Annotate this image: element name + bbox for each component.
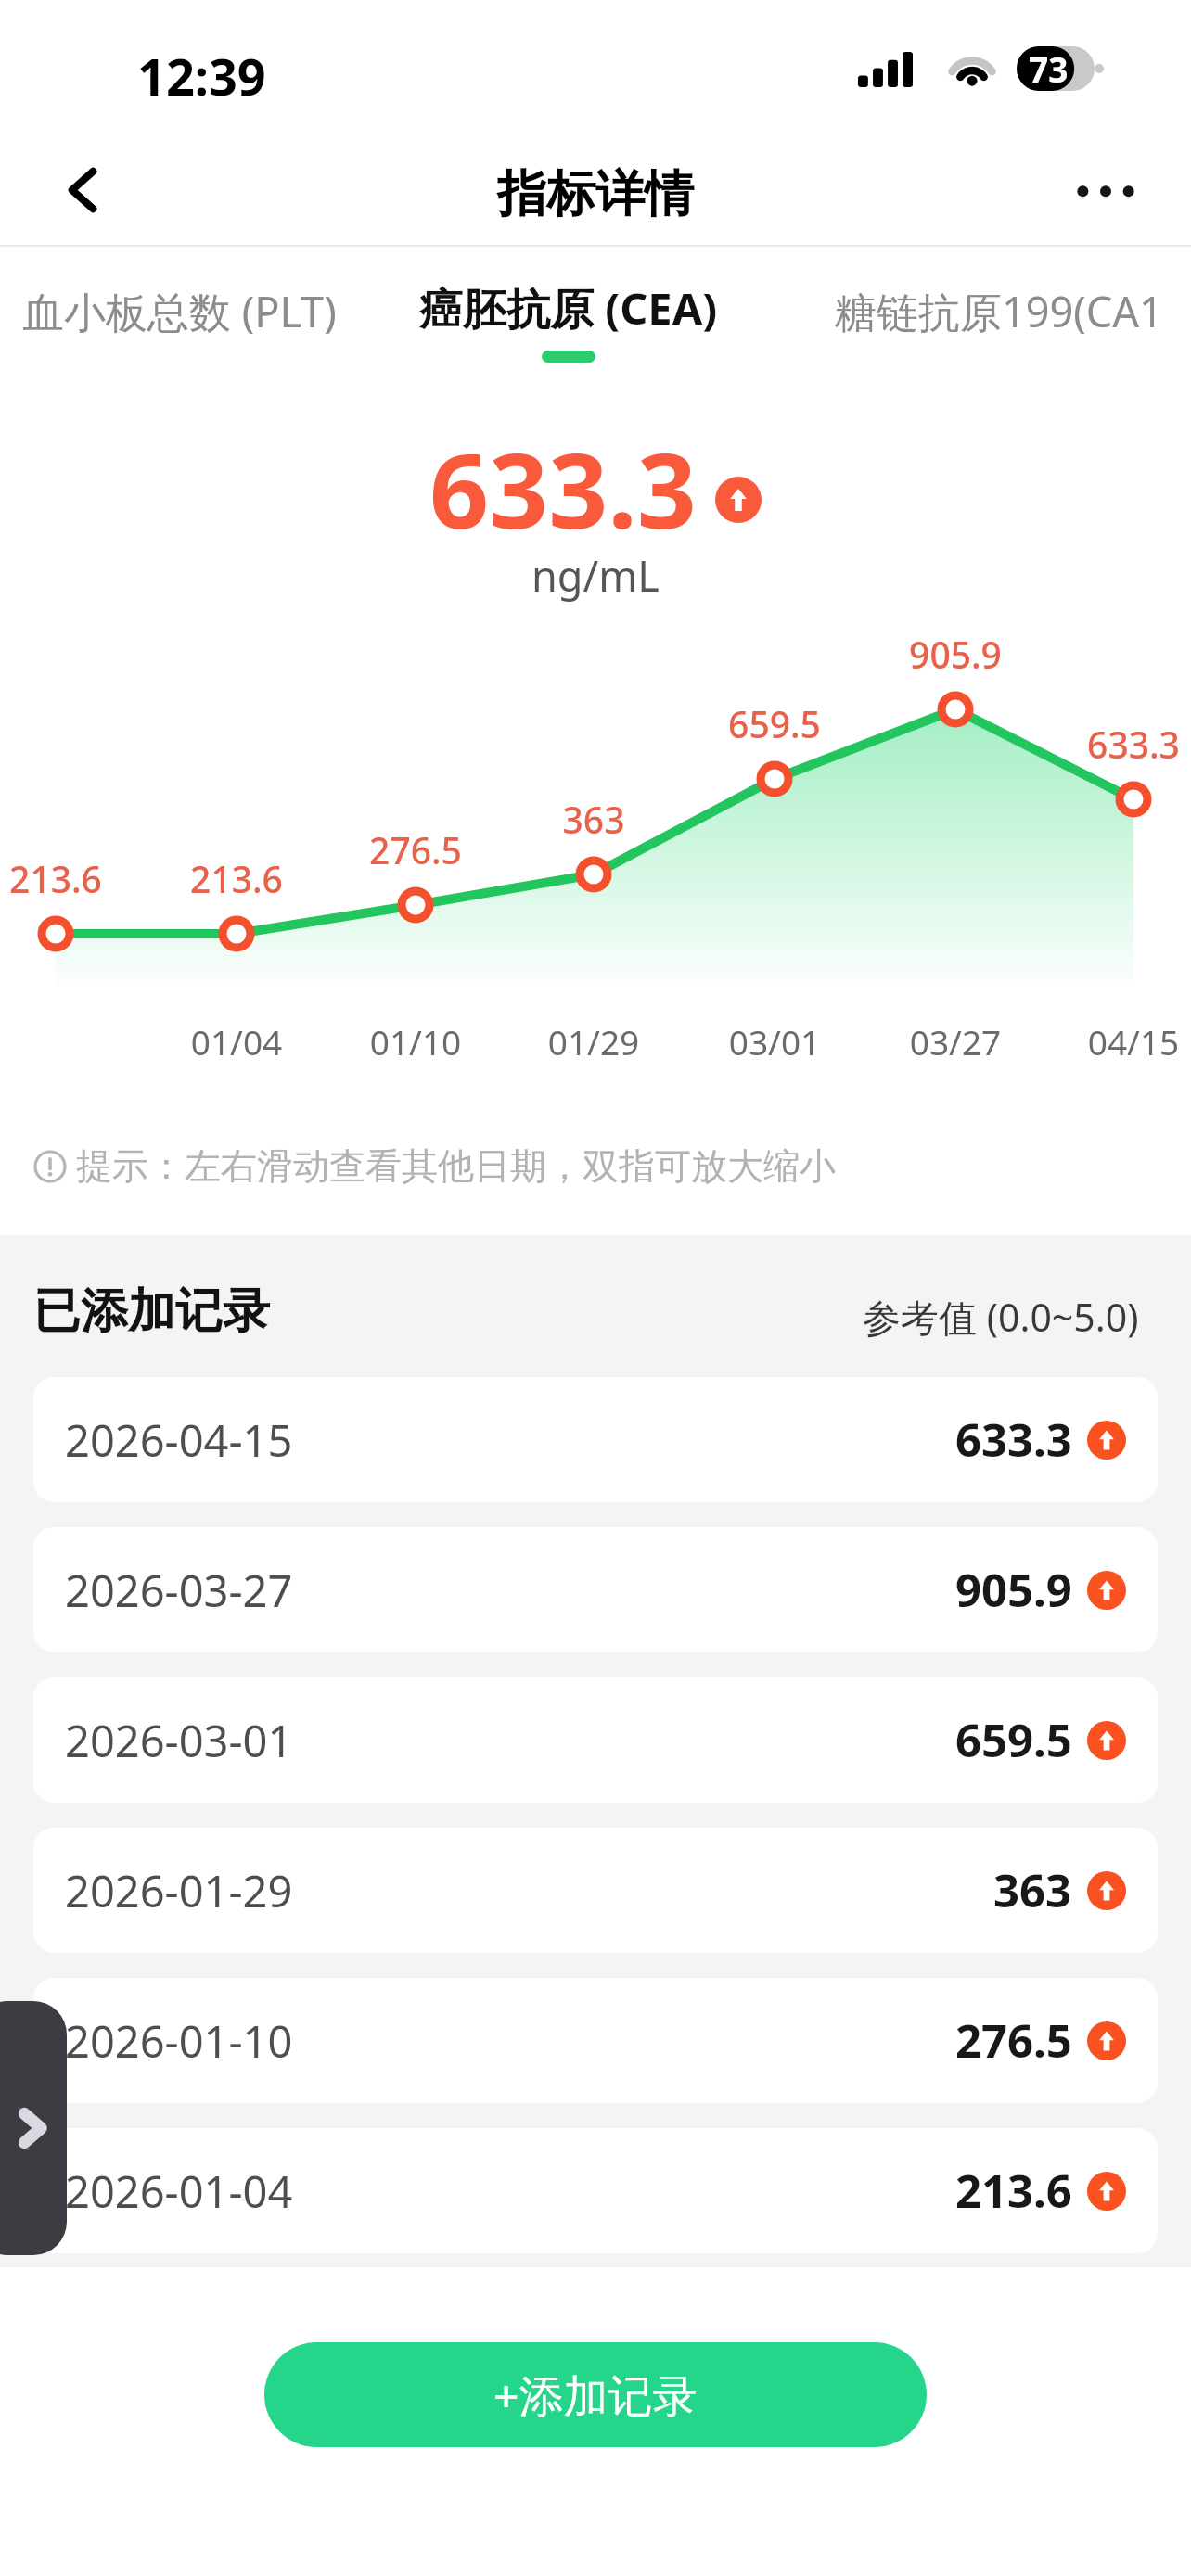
staticText: 276.5 (955, 2009, 1072, 2072)
staticText: 363 (510, 795, 677, 844)
staticText: 633.3 (1050, 720, 1191, 769)
button[interactable]: 2026-01-29 (33, 1828, 1158, 1953)
button[interactable]: 2026-04-15 (33, 1377, 1158, 1502)
staticText: 2026-01-10 (65, 2011, 293, 2071)
staticText: 03/27 (890, 1018, 1020, 1065)
staticText: 03/01 (710, 1018, 839, 1065)
staticText: 2026-03-01 (65, 1711, 293, 1770)
staticText: 213.6 (0, 854, 139, 903)
staticText: 363 (993, 1859, 1072, 1921)
staticText: 633.3 (429, 417, 697, 559)
button[interactable]: 2026-01-04 (33, 2128, 1158, 2253)
button[interactable]: +添加记录 (264, 2342, 927, 2447)
staticText: 2026-03-27 (65, 1561, 293, 1620)
staticText: 2026-04-15 (65, 1410, 293, 1470)
button[interactable]: Open side panel (0, 2001, 67, 2255)
staticText: 905.9 (955, 1559, 1072, 1621)
staticText: 2026-01-29 (65, 1861, 293, 1920)
button[interactable]: 2026-03-27 (33, 1527, 1158, 1652)
staticText: 2026-01-04 (65, 2162, 293, 2221)
staticText: +添加记录 (493, 2365, 698, 2426)
staticText: 01/29 (529, 1018, 659, 1065)
staticText: ng/mL (0, 547, 1191, 604)
staticText: 提示：左右滑动查看其他日期，双指可放大缩小 (76, 1143, 836, 1189)
staticText: 参考值 (0.0~5.0) (863, 1291, 1139, 1343)
staticText: 12:39 (137, 42, 266, 110)
button[interactable]: 癌胚抗原 (CEA) (419, 278, 718, 363)
staticText: 659.5 (691, 699, 858, 748)
staticText: 213.6 (955, 2160, 1072, 2222)
button[interactable]: 2026-01-10 (33, 1978, 1158, 2103)
staticText: 905.9 (872, 630, 1039, 679)
staticText: 01/04 (172, 1018, 301, 1065)
button[interactable]: Back (46, 151, 124, 229)
button[interactable]: 糖链抗原199(CA1 (835, 283, 1163, 339)
staticText: 指标详情 (0, 163, 1191, 225)
staticText: 213.6 (153, 854, 320, 903)
staticText: 73 (1029, 45, 1069, 90)
button[interactable]: More options (1065, 162, 1146, 218)
button[interactable]: 血小板总数 (PLT) (22, 283, 337, 339)
staticText: 276.5 (332, 825, 499, 874)
staticText: 已添加记录 (33, 1282, 270, 1341)
button[interactable]: 2026-03-01 (33, 1677, 1158, 1803)
staticText: 01/10 (351, 1018, 480, 1065)
staticText: 633.3 (955, 1409, 1072, 1471)
staticText: 659.5 (955, 1709, 1072, 1771)
staticText: 癌胚抗原 (CEA) (419, 278, 718, 338)
staticText: 04/15 (1069, 1018, 1191, 1065)
